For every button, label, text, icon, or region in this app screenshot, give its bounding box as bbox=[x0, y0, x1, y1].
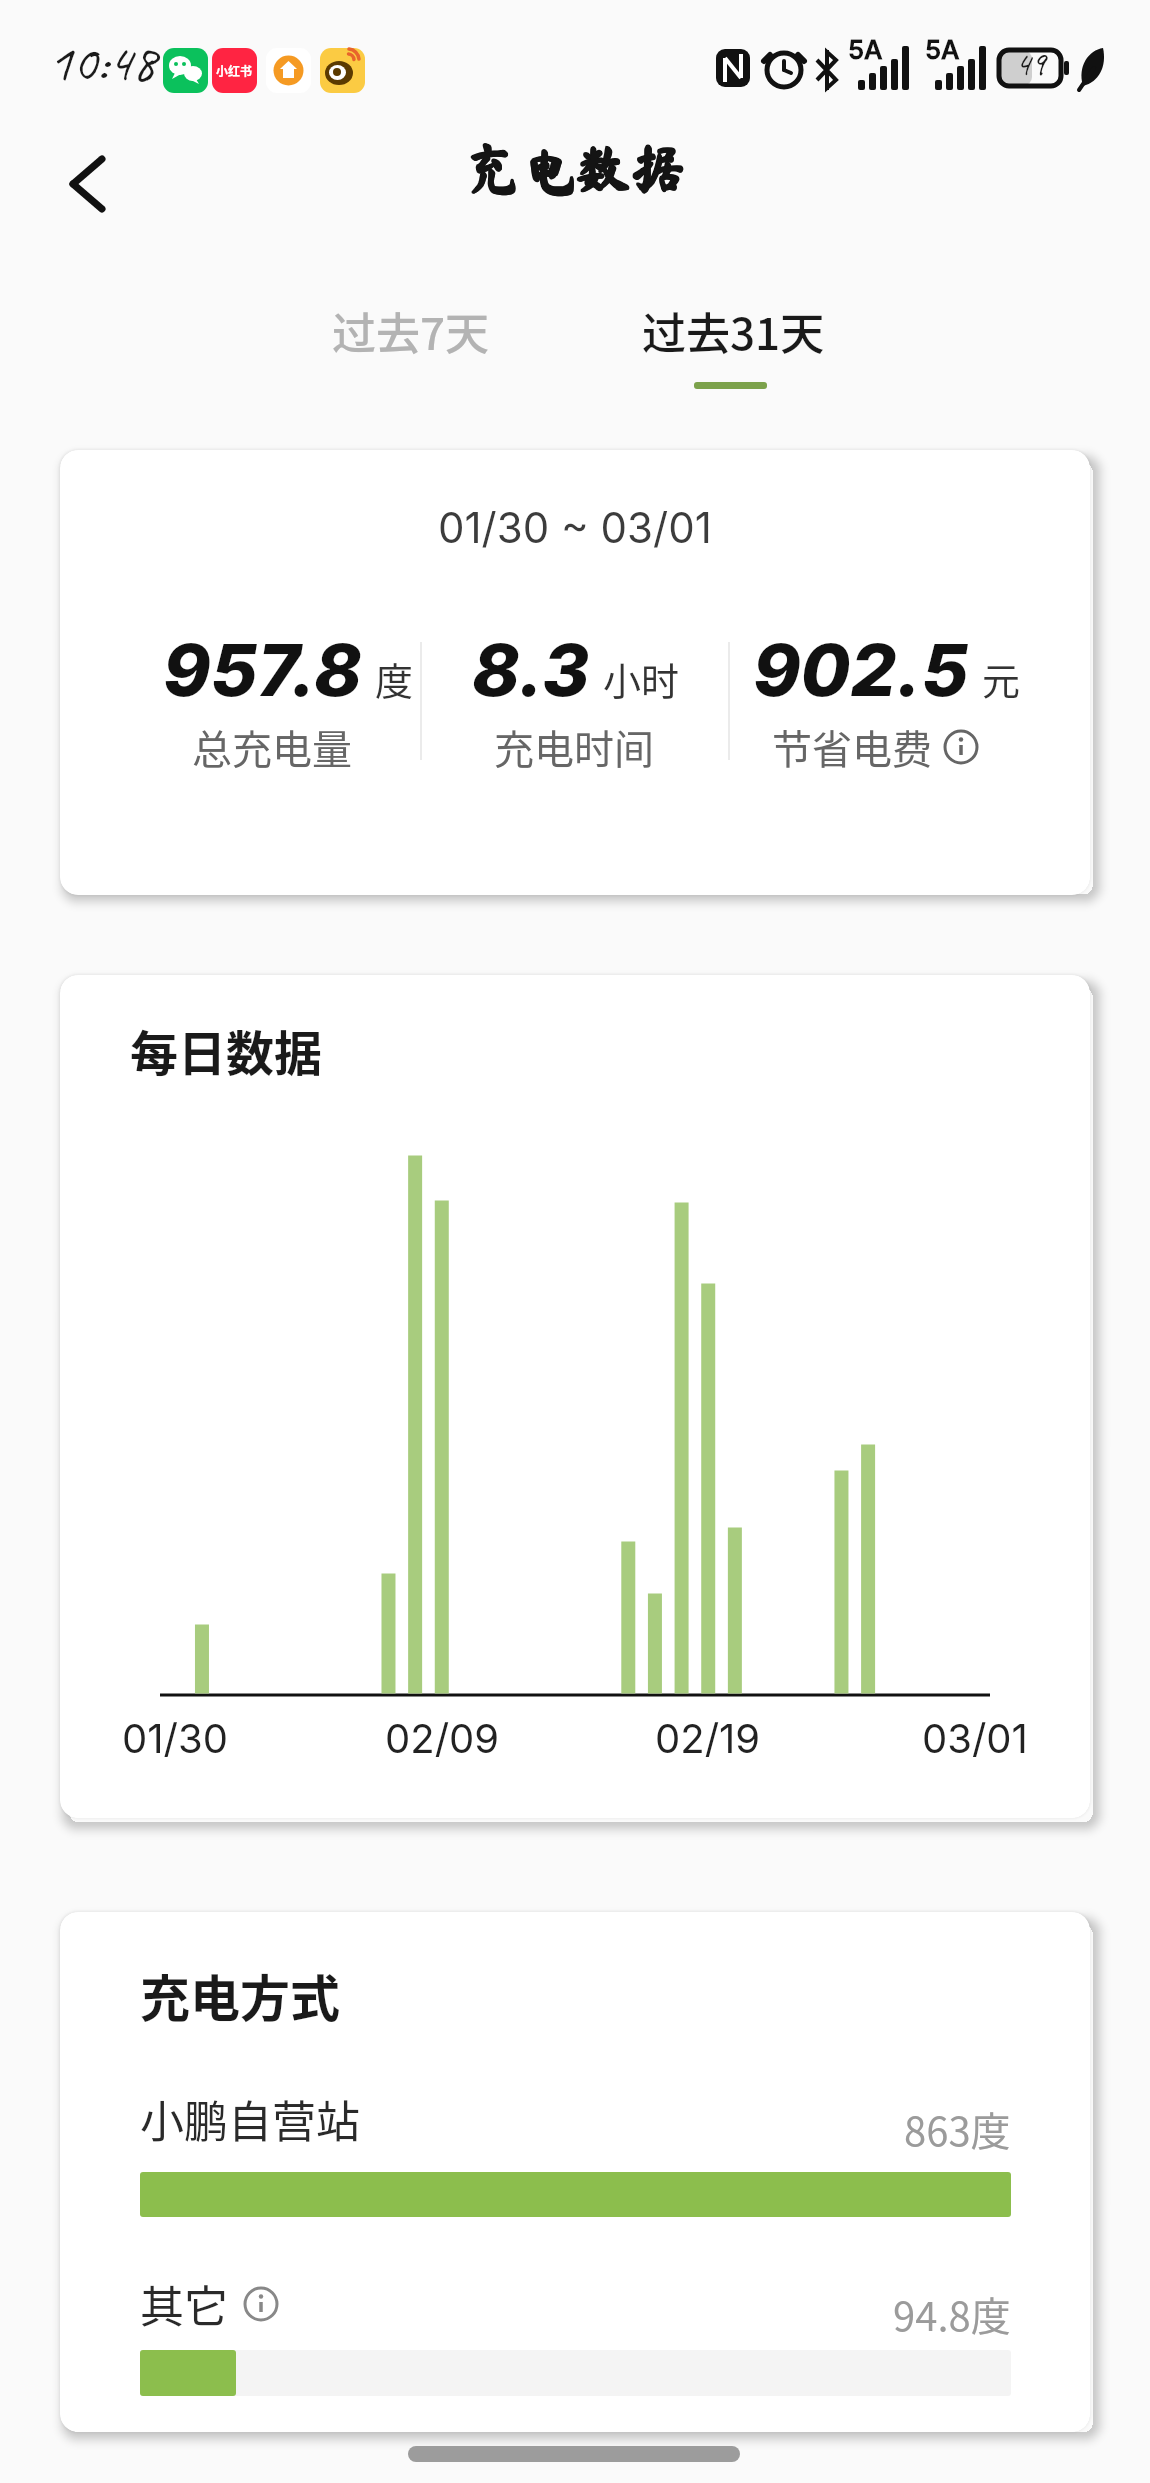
staticText: 充电时间 bbox=[494, 718, 654, 776]
staticText: 充电方式 bbox=[140, 1959, 340, 2031]
staticText: 03/01 bbox=[922, 1714, 1028, 1762]
staticText: 充电数据 bbox=[466, 141, 687, 196]
staticText: 957.8 bbox=[163, 626, 362, 713]
staticText: 过去31天 bbox=[642, 299, 825, 363]
staticText: 小鹏自营站 bbox=[140, 2087, 360, 2151]
staticText: 度 bbox=[375, 651, 414, 706]
staticText: 94.8度 bbox=[893, 2285, 1011, 2343]
button[interactable]: 过去7天 bbox=[261, 296, 561, 366]
staticText: 49 bbox=[1015, 42, 1046, 85]
staticText: 02/09 bbox=[385, 1714, 500, 1762]
staticText: 小时 bbox=[603, 651, 680, 706]
staticText: 01/30 bbox=[122, 1714, 228, 1762]
staticText: 充电数据 bbox=[465, 141, 686, 196]
staticText: 5A bbox=[848, 34, 883, 65]
staticText: 01/30 ~ 03/01 bbox=[438, 502, 712, 553]
staticText: 02/19 bbox=[655, 1714, 761, 1762]
staticText: 5A bbox=[925, 34, 960, 65]
staticText: 充电数据 bbox=[466, 141, 687, 196]
staticText: 充电数据 bbox=[465, 140, 686, 195]
staticText: 充电数据 bbox=[466, 140, 687, 195]
button[interactable] bbox=[68, 156, 108, 212]
button[interactable]: 过去31天 bbox=[583, 296, 883, 366]
staticText: 元 bbox=[982, 651, 1021, 706]
staticText: 每日数据 bbox=[130, 1015, 323, 1085]
staticText: 863度 bbox=[904, 2100, 1011, 2158]
button[interactable]: 节省电费 bbox=[772, 718, 980, 776]
staticText: 过去7天 bbox=[332, 299, 490, 363]
staticText: 总充电量 bbox=[192, 718, 352, 776]
staticText: 节省电费 bbox=[772, 718, 932, 776]
staticText: 902.5 bbox=[753, 626, 969, 713]
staticText: 8.3 bbox=[472, 626, 590, 713]
button[interactable]: 其它 bbox=[140, 2272, 280, 2336]
staticText: 10:48 bbox=[48, 28, 156, 96]
staticText: 其它 bbox=[140, 2272, 228, 2336]
staticText: 小红书 bbox=[216, 62, 253, 79]
